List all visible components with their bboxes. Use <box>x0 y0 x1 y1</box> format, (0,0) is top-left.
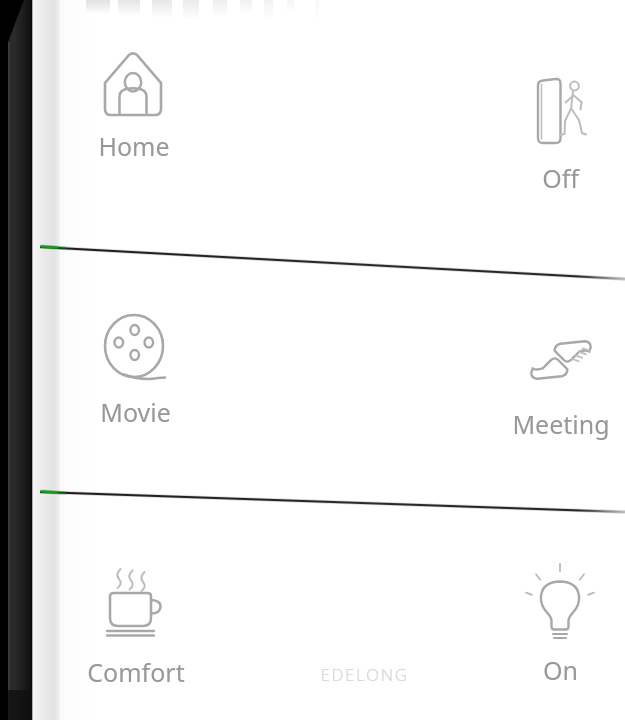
staticText: Comfort <box>87 655 185 689</box>
staticText: On <box>543 653 578 687</box>
button[interactable]: Lights On <box>360 515 625 720</box>
staticText: Home <box>98 129 170 163</box>
staticText: EDELONG <box>320 663 409 686</box>
button[interactable]: Away / Off <box>360 0 625 250</box>
button[interactable]: Comfort scene <box>60 515 625 720</box>
button[interactable]: Meeting scene <box>360 255 625 495</box>
staticText: Meeting <box>512 407 610 441</box>
staticText: Off <box>542 161 579 195</box>
button[interactable]: Home scene <box>60 0 625 250</box>
staticText: Movie <box>100 395 171 429</box>
button[interactable]: Movie scene <box>60 255 625 495</box>
